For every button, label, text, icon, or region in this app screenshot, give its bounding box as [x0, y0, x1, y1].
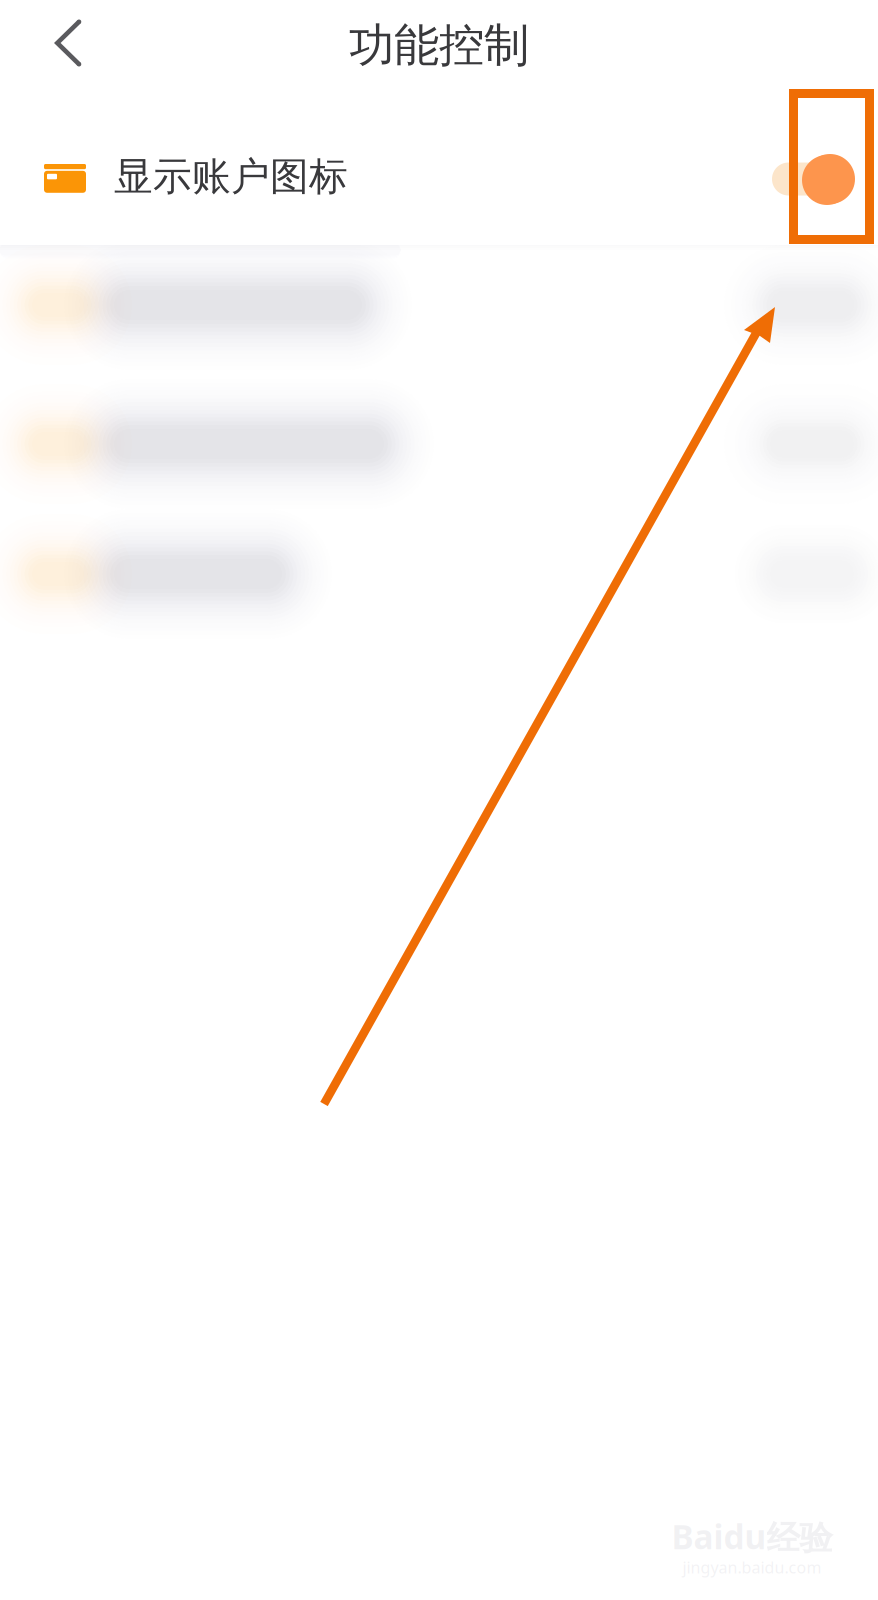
- staticText: 功能控制: [349, 18, 529, 73]
- staticText: 显示账户图标: [114, 153, 348, 200]
- button[interactable]: 显示账户图标: [0, 99, 878, 245]
- button[interactable]: Back: [27, 0, 109, 88]
- staticText: jingyan.baidu.com: [682, 1557, 821, 1578]
- staticText: Baidu经验: [671, 1514, 832, 1559]
